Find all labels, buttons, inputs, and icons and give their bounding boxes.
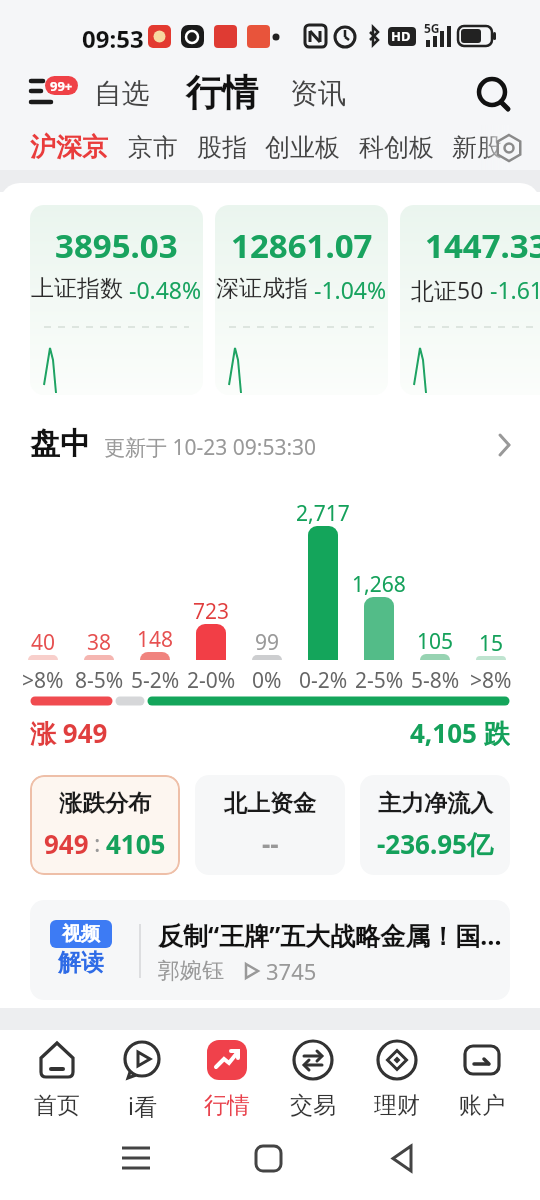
staticText: 949 [44, 826, 89, 861]
button[interactable] [492, 131, 526, 165]
staticText: 1447.33 [425, 223, 540, 268]
staticText: -1.61% [484, 274, 540, 305]
button[interactable]: 股指 [197, 132, 247, 163]
staticText: 5G [424, 20, 440, 36]
staticText: >8% [470, 666, 512, 694]
staticText: 5-2% [131, 666, 180, 694]
staticText: 4,105 跌 [410, 715, 510, 749]
button[interactable]: 科创板 [359, 132, 434, 163]
button[interactable]: 账户 [440, 1036, 524, 1120]
staticText: 涨跌分布 [59, 789, 151, 818]
staticText: 郭婉钰 [158, 957, 224, 985]
button[interactable]: 行情 [186, 70, 258, 115]
button[interactable]: 主力净流入 [360, 775, 510, 875]
staticText: 1,268 [352, 570, 406, 599]
button[interactable]: 资讯 [290, 76, 346, 111]
staticText: -- [262, 826, 279, 861]
staticText: 5-8% [411, 666, 460, 694]
staticText: 723 [193, 597, 230, 626]
button[interactable]: 涨跌分布 [30, 775, 180, 875]
button[interactable]: 新股 [452, 132, 502, 163]
staticText: 反制“王牌”五大战略金属！国… [158, 918, 502, 952]
button[interactable]: 视频 [30, 900, 510, 1000]
staticText: 38 [87, 628, 112, 657]
staticText: 99+ [50, 77, 73, 95]
button[interactable]: 1447.33 [400, 205, 540, 395]
staticText: >8% [22, 666, 64, 694]
staticText: -236.95亿 [377, 826, 493, 862]
staticText: 3745 [266, 956, 317, 986]
staticText: 解读 [58, 948, 104, 977]
staticText: 视频 [62, 922, 100, 946]
staticText: 更新于 10-23 09:53:30 [104, 433, 317, 462]
staticText: 主力净流入 [378, 789, 493, 818]
button[interactable]: 创业板 [265, 132, 340, 163]
staticText: 2-0% [187, 666, 236, 694]
button[interactable]: 12861.07 [215, 205, 388, 395]
staticText: 2,717 [296, 499, 350, 528]
staticText: 上证指数 [31, 274, 123, 303]
staticText: 105 [417, 627, 454, 656]
button[interactable]: i看 [100, 1036, 184, 1120]
staticText: 首页 [34, 1091, 80, 1120]
staticText: 交易 [290, 1091, 336, 1120]
staticText: HD [391, 27, 411, 45]
button[interactable]: 交易 [271, 1036, 355, 1120]
button[interactable]: 北上资金 [195, 775, 345, 875]
staticText: 09:53 [82, 22, 144, 55]
staticText: 深证成指 [216, 274, 308, 303]
staticText: 12861.07 [231, 223, 373, 268]
staticText: 理财 [374, 1091, 420, 1120]
staticText: 15 [479, 629, 504, 658]
staticText: 148 [137, 625, 174, 654]
staticText: 2-5% [355, 666, 404, 694]
button[interactable]: 盘中 [0, 421, 540, 471]
staticText: 盘中 [30, 425, 90, 463]
button[interactable]: 99+ [24, 68, 110, 114]
staticText: 北上资金 [224, 789, 316, 818]
button[interactable]: 理财 [355, 1036, 439, 1120]
staticText: 99 [255, 628, 280, 657]
staticText: 账户 [459, 1091, 505, 1120]
button[interactable] [474, 74, 514, 114]
staticText: 4105 [106, 826, 166, 861]
staticText: 行情 [204, 1091, 250, 1120]
button[interactable]: 行情 [185, 1036, 269, 1120]
staticText: i看 [128, 1090, 157, 1120]
button[interactable]: 首页 [15, 1036, 99, 1120]
staticText: 0-2% [299, 666, 348, 694]
staticText: 3895.03 [55, 223, 178, 268]
button[interactable]: 3895.03 [30, 205, 203, 395]
staticText: -0.48% [123, 274, 202, 305]
staticText: 涨 949 [30, 715, 108, 751]
staticText: -1.04% [308, 274, 387, 305]
staticText: : [94, 826, 101, 859]
button[interactable]: 沪深京 [30, 131, 108, 164]
staticText: 40 [31, 628, 56, 657]
button[interactable]: 自选 [94, 76, 150, 111]
staticText: 8-5% [75, 666, 124, 694]
button[interactable]: 京市 [128, 132, 178, 163]
staticText: 北证50 [411, 274, 484, 305]
staticText: 0% [252, 666, 282, 694]
